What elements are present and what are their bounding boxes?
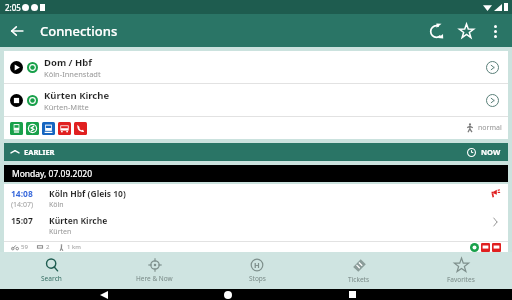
button[interactable]: Recents bbox=[341, 289, 363, 300]
button[interactable]: Favorite bbox=[451, 16, 481, 46]
staticText: 15:07 bbox=[11, 215, 33, 227]
staticText: Connections bbox=[40, 22, 118, 40]
staticText: Favorites bbox=[447, 275, 475, 284]
staticText: 59 bbox=[21, 243, 28, 251]
button[interactable]: Search bbox=[0, 252, 103, 289]
staticText: Stops bbox=[249, 274, 266, 283]
button[interactable]: Favorites bbox=[410, 252, 512, 289]
button[interactable]: H bbox=[206, 252, 308, 289]
button[interactable]: EARLIER bbox=[4, 143, 508, 161]
staticText: NOW bbox=[481, 147, 501, 157]
button[interactable]: Transport mode bbox=[42, 122, 55, 135]
staticText: Kürten Kirche bbox=[49, 215, 108, 227]
staticText: Köln bbox=[49, 200, 64, 210]
staticText: Köln Hbf (Gleis 10) bbox=[49, 188, 126, 200]
button[interactable]: Tickets bbox=[308, 252, 410, 289]
staticText: Kürten Kirche bbox=[44, 89, 110, 102]
staticText: 2:05 bbox=[5, 2, 21, 13]
button[interactable]: Back bbox=[0, 14, 33, 47]
staticText: Tickets bbox=[348, 275, 370, 284]
button[interactable]: Details bbox=[482, 57, 502, 77]
staticText: Kürten bbox=[49, 227, 72, 237]
staticText: (14:07) bbox=[11, 200, 34, 210]
staticText: Search bbox=[41, 274, 62, 283]
button[interactable]: Here & Now bbox=[103, 252, 206, 289]
staticText: Dom / Hbf bbox=[44, 56, 92, 69]
staticText: EARLIER bbox=[24, 147, 55, 157]
button[interactable]: Details bbox=[482, 90, 502, 110]
button[interactable]: Transport mode bbox=[74, 122, 87, 135]
button[interactable]: Transport mode bbox=[26, 122, 39, 135]
staticText: 14:08 bbox=[11, 188, 33, 200]
staticText: H bbox=[254, 260, 260, 270]
button[interactable]: 14:08 bbox=[4, 184, 508, 252]
button[interactable]: Transport mode bbox=[58, 122, 71, 135]
button[interactable]: Home bbox=[217, 289, 239, 300]
button[interactable]: More options bbox=[481, 17, 509, 45]
staticText: Monday, 07.09.2020 bbox=[12, 168, 93, 180]
button[interactable]: Transport mode bbox=[10, 122, 23, 135]
staticText: 1 km bbox=[67, 243, 81, 251]
staticText: normal bbox=[478, 123, 502, 133]
button[interactable]: NOW bbox=[467, 147, 501, 157]
staticText: Kürten-Mitte bbox=[44, 102, 89, 112]
button[interactable]: Kürten Kirche bbox=[4, 84, 508, 116]
staticText: Köln-Innenstadt bbox=[44, 69, 101, 79]
button[interactable]: Refresh bbox=[421, 16, 451, 46]
button[interactable]: Dom / Hbf bbox=[4, 51, 508, 83]
staticText: 2 bbox=[46, 243, 50, 251]
other: Open connection bbox=[488, 215, 501, 228]
staticText: Here & Now bbox=[136, 274, 173, 283]
button[interactable]: Back bbox=[93, 289, 115, 300]
